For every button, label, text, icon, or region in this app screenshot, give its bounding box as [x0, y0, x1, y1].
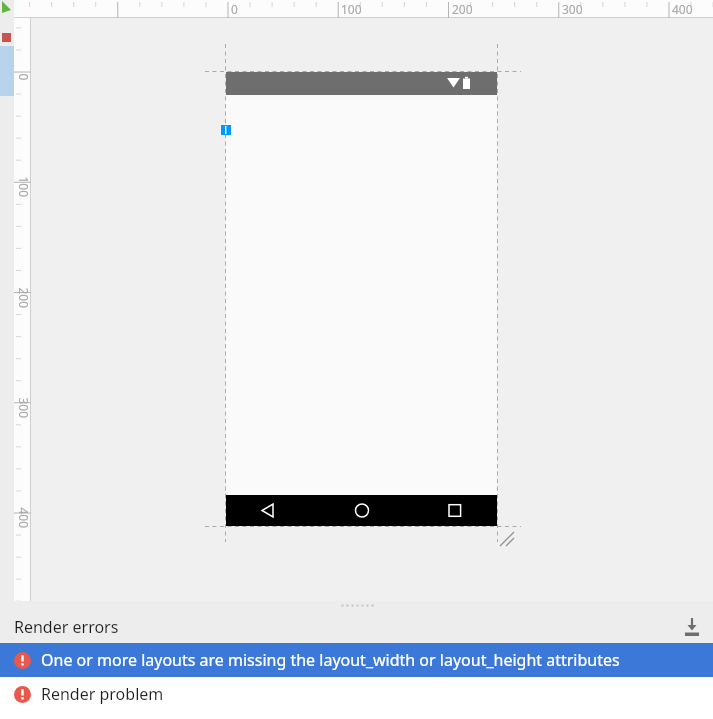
staticText: 400: [672, 1, 693, 17]
button[interactable]: Render problem: [0, 677, 713, 711]
staticText: Render problem: [41, 683, 164, 705]
staticText: 100: [15, 176, 31, 197]
staticText: 0: [15, 73, 31, 80]
button[interactable]: One or more layouts are missing the layo…: [0, 643, 713, 677]
staticText: 200: [15, 287, 31, 308]
button[interactable]: Export render errors: [679, 614, 705, 640]
staticText: 200: [452, 1, 473, 17]
staticText: Render errors: [14, 616, 119, 638]
staticText: 300: [15, 397, 31, 418]
staticText: 100: [341, 1, 362, 17]
staticText: 300: [562, 1, 583, 17]
staticText: 400: [15, 507, 31, 528]
staticText: One or more layouts are missing the layo…: [41, 649, 620, 671]
staticText: 0: [231, 1, 238, 17]
